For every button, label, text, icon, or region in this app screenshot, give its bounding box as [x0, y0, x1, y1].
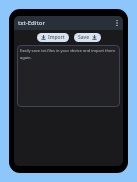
staticText: txt-Editor	[18, 19, 45, 27]
button[interactable]: Save	[74, 33, 101, 42]
staticText: Import	[48, 34, 65, 41]
button[interactable]: Import	[37, 33, 69, 42]
staticText: Save	[78, 34, 90, 41]
staticText: Easily save txt-files in your device and…	[20, 48, 117, 60]
button[interactable]: More options	[111, 17, 123, 29]
button[interactable]: Easily save txt-files in your device and…	[17, 45, 120, 107]
